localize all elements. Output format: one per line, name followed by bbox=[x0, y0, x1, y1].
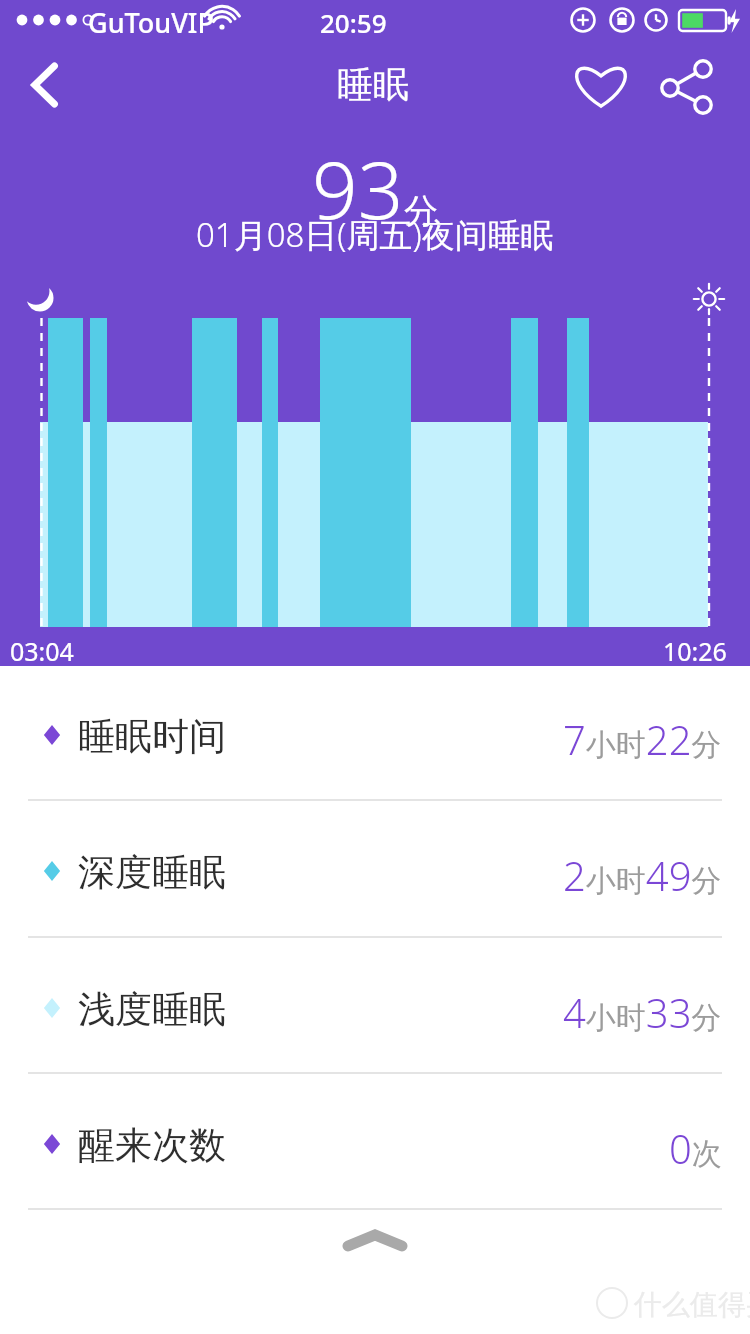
staticText: 03:04 bbox=[10, 634, 74, 668]
button[interactable]: Share bbox=[656, 52, 720, 118]
staticText: 20:59 bbox=[320, 5, 387, 40]
button[interactable]: 浅度睡眠 bbox=[0, 940, 750, 1074]
button[interactable]: Favorite bbox=[570, 52, 634, 118]
staticText: 睡眠时间 bbox=[78, 713, 226, 760]
staticText: 2小时49分 bbox=[563, 848, 722, 902]
staticText: 93 bbox=[312, 133, 404, 242]
staticText: 睡眠 bbox=[337, 62, 409, 107]
staticText: 10:26 bbox=[663, 634, 727, 668]
button[interactable]: Back bbox=[12, 52, 78, 118]
button[interactable]: 深度睡眠 bbox=[0, 803, 750, 937]
staticText: 7小时22分 bbox=[563, 712, 722, 766]
button[interactable]: 睡眠时间 bbox=[0, 667, 750, 801]
button[interactable]: 睡眠 bbox=[337, 62, 409, 107]
staticText: GuTouVIP bbox=[88, 4, 214, 41]
staticText: 醒来次数 bbox=[78, 1122, 226, 1169]
staticText: 浅度睡眠 bbox=[78, 986, 226, 1033]
staticText: 01月08日(周五)夜间睡眠 bbox=[196, 212, 554, 257]
staticText: 什么值得买 bbox=[634, 1287, 750, 1322]
staticText: 0次 bbox=[669, 1121, 722, 1175]
staticText: 深度睡眠 bbox=[78, 849, 226, 896]
staticText: 4小时33分 bbox=[563, 985, 722, 1039]
button[interactable]: 醒来次数 bbox=[0, 1076, 750, 1210]
staticText: 分 bbox=[404, 190, 438, 233]
